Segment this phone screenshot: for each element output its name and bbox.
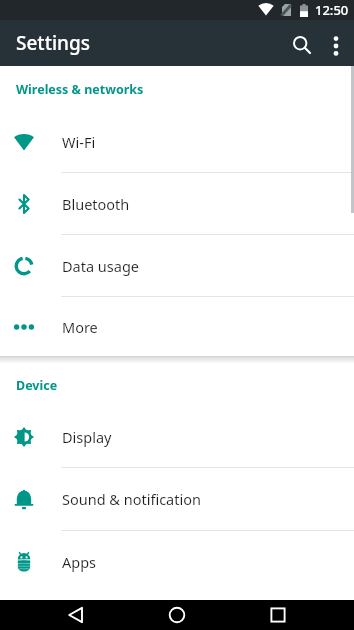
staticText: Apps xyxy=(62,552,97,572)
button[interactable]: Wi-Fi xyxy=(0,112,354,172)
staticText: Wi-Fi xyxy=(62,132,96,152)
button[interactable]: Data usage xyxy=(0,235,354,296)
staticText: Bluetooth xyxy=(62,194,130,214)
button[interactable] xyxy=(42,600,110,630)
staticText: Device xyxy=(16,377,58,394)
staticText: Data usage xyxy=(62,256,139,276)
button[interactable]: Apps xyxy=(0,531,354,592)
staticText: More xyxy=(62,317,98,337)
staticText: Display xyxy=(62,427,112,447)
staticText: Wireless & networks xyxy=(16,81,144,98)
button[interactable] xyxy=(277,23,317,63)
staticText: Sound & notification xyxy=(62,489,201,509)
button[interactable]: Display xyxy=(0,406,354,467)
button[interactable] xyxy=(317,25,354,62)
button[interactable] xyxy=(143,600,211,630)
button[interactable]: Bluetooth xyxy=(0,173,354,234)
button[interactable] xyxy=(244,600,312,630)
staticText: 12:50 xyxy=(315,1,349,19)
button[interactable]: Sound & notification xyxy=(0,468,354,530)
staticText: Settings xyxy=(16,30,90,56)
button[interactable]: More xyxy=(0,297,354,356)
